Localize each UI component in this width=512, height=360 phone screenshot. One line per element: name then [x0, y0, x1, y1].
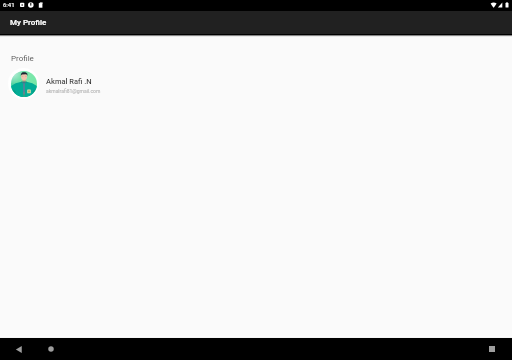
staticText: akmalrafi81@gmail.com [46, 88, 101, 94]
button[interactable]: Akmal Rafi .N [0, 69, 512, 107]
staticText: 6:41 [3, 1, 15, 8]
staticText: Akmal Rafi .N [46, 77, 92, 86]
button[interactable]: Back [9, 340, 27, 358]
staticText: Profile [11, 54, 34, 63]
button[interactable]: Recents [483, 340, 501, 358]
staticText: My Profile [10, 18, 47, 27]
button[interactable]: Home [42, 340, 60, 358]
